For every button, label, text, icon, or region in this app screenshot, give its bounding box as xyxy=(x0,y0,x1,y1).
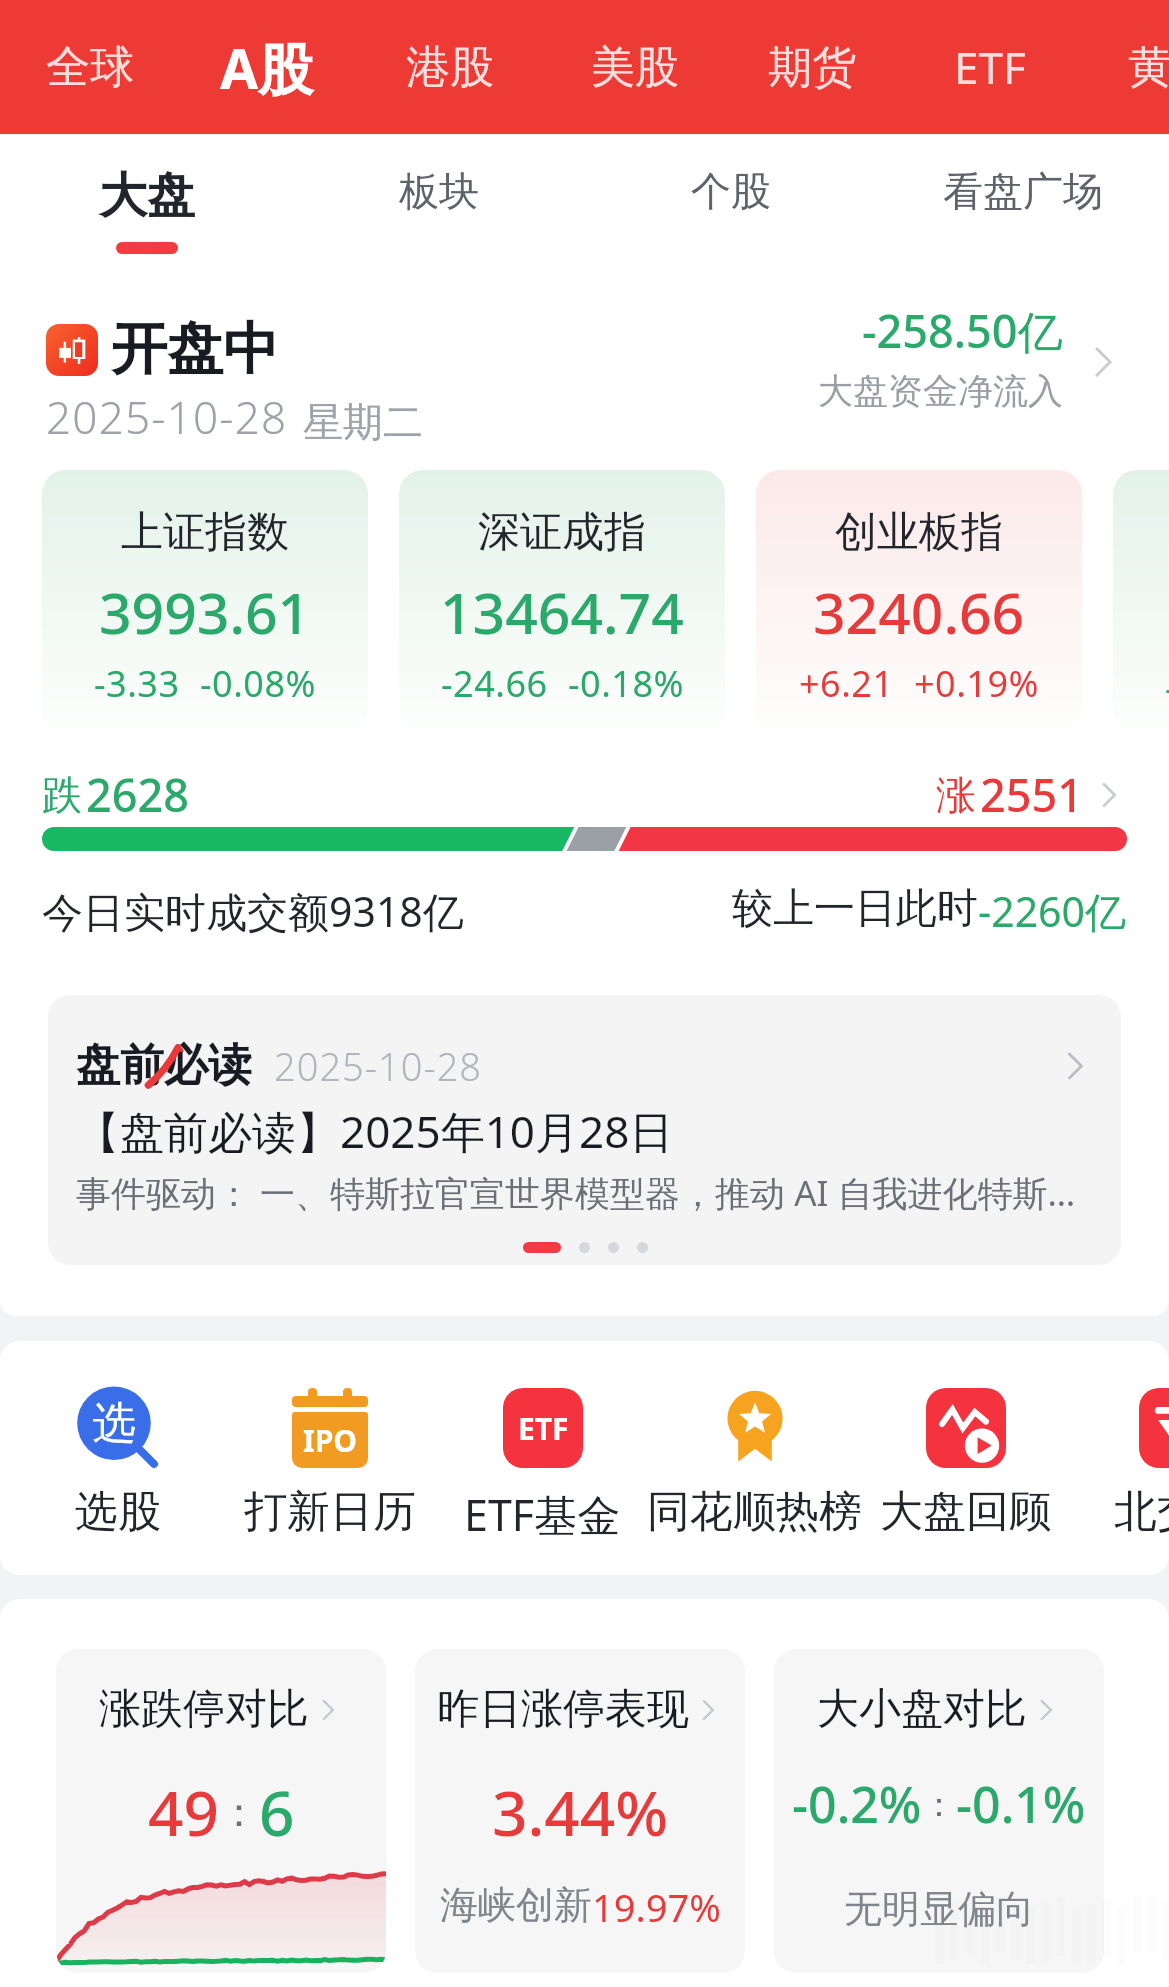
staticText: 看盘广场 xyxy=(943,166,1103,216)
staticText: ： xyxy=(219,1787,259,1837)
staticText: 板块 xyxy=(399,166,479,216)
staticText: -0.2% xyxy=(792,1770,922,1838)
staticText: 星期二 xyxy=(303,397,423,447)
button[interactable]: 美股 xyxy=(577,0,693,134)
staticText: ： xyxy=(922,1783,956,1826)
button[interactable]: 盘前必读 xyxy=(48,995,1121,1265)
button[interactable]: 全球 xyxy=(32,0,148,134)
staticText: 无明显偏向 xyxy=(844,1885,1034,1933)
staticText: 涨跌停对比 xyxy=(99,1683,309,1736)
staticText: 打新日历 xyxy=(244,1485,416,1539)
button[interactable]: 大盘 xyxy=(0,134,293,258)
button[interactable]: 深证成指 xyxy=(399,470,725,734)
staticText: -3.33 xyxy=(94,659,180,708)
staticText: 北交所 xyxy=(1114,1485,1169,1539)
other: 查看资金流向 xyxy=(1081,340,1125,384)
staticText: 上证指数 xyxy=(121,506,289,559)
staticText: A股 xyxy=(220,30,314,105)
staticText: 跌 xyxy=(42,770,82,820)
staticText: -0.1% xyxy=(956,1770,1086,1838)
staticText: -24.66 xyxy=(441,659,548,708)
button[interactable]: 涨跌停对比 xyxy=(56,1649,386,1973)
button[interactable]: 黄 xyxy=(1092,0,1169,134)
button[interactable]: 开盘中 xyxy=(0,258,1169,470)
staticText: 【盘前必读】2025年10月28日 xyxy=(76,1101,674,1161)
staticText: 19.97% xyxy=(592,1881,721,1933)
staticText: -2260亿 xyxy=(978,883,1127,939)
button[interactable]: A股 xyxy=(209,0,325,134)
staticText: 期货 xyxy=(768,40,856,95)
staticText: ETF xyxy=(954,37,1026,97)
button[interactable]: 港股 xyxy=(392,0,508,134)
staticText: IPO xyxy=(303,1420,358,1461)
button[interactable]: 北交所 xyxy=(1072,1341,1169,1575)
staticText: -258.50亿 xyxy=(862,300,1063,361)
button[interactable]: ETF xyxy=(932,0,1048,134)
staticText: 选股 xyxy=(75,1485,161,1539)
staticText: 全球 xyxy=(46,40,134,95)
button[interactable]: 跌 xyxy=(42,764,1127,825)
staticText: 同花顺热榜 xyxy=(647,1485,862,1539)
staticText: 大盘 xyxy=(99,166,195,226)
staticText: 今日实时成交额9318亿 xyxy=(42,883,464,939)
button[interactable]: 昨日涨停表现 xyxy=(415,1649,745,1973)
staticText: ETF xyxy=(518,1408,569,1449)
staticText: 13464.74 xyxy=(440,573,684,651)
staticText: 大小盘对比 xyxy=(817,1683,1027,1736)
button[interactable]: IPO xyxy=(224,1341,436,1575)
staticText: 黄 xyxy=(1128,40,1169,95)
staticText: 大盘资金净流入 xyxy=(818,369,1063,413)
staticText: 港股 xyxy=(406,40,494,95)
staticText: 美股 xyxy=(591,40,679,95)
staticText: 事件驱动： 一、特斯拉官宣世界模型器，推动 AI 自我进化特斯… xyxy=(76,1169,1076,1217)
button[interactable]: 大盘回顾 xyxy=(860,1341,1072,1575)
staticText: 2628 xyxy=(86,764,189,825)
staticText: -0.08% xyxy=(200,659,316,708)
button[interactable]: 同花顺热榜 xyxy=(648,1341,860,1575)
button[interactable]: 看盘广场 xyxy=(877,134,1169,258)
staticText: 深证成指 xyxy=(478,506,646,559)
staticText: 大盘回顾 xyxy=(880,1485,1052,1539)
staticText: 选 xyxy=(92,1396,136,1451)
staticText: 涨 xyxy=(936,770,976,820)
staticText: 2025-10-28 xyxy=(274,1040,483,1092)
staticText: 开盘中 xyxy=(111,314,279,385)
staticText: +0.19% xyxy=(914,659,1039,708)
button[interactable]: 上证指数 xyxy=(42,470,368,734)
staticText: 6 xyxy=(259,1770,295,1854)
staticText: -3.12 xyxy=(1165,663,1169,712)
button[interactable]: 大小盘对比 xyxy=(774,1649,1104,1973)
button[interactable]: 期货 xyxy=(754,0,870,134)
staticText: 个股 xyxy=(691,166,771,216)
button[interactable]: ETF xyxy=(436,1341,648,1575)
staticText: 海峡创新 xyxy=(440,1881,592,1929)
staticText: 3.44% xyxy=(492,1770,669,1854)
button[interactable]: 北证50 xyxy=(1113,470,1169,734)
staticText: 盘前必读 xyxy=(76,1038,252,1093)
button[interactable]: 选 xyxy=(12,1341,224,1575)
staticText: +6.21 xyxy=(799,659,894,708)
staticText: 3993.61 xyxy=(99,573,311,651)
button[interactable]: 板块 xyxy=(293,134,585,258)
staticText: 2025-10-28 xyxy=(46,387,288,447)
button[interactable]: 个股 xyxy=(585,134,877,258)
staticText: 昨日涨停表现 xyxy=(437,1683,689,1736)
staticText: 创业板指 xyxy=(835,506,1003,559)
staticText: 49 xyxy=(148,1770,219,1854)
staticText: 2551 xyxy=(980,764,1083,825)
staticText: ETF基金 xyxy=(464,1485,621,1544)
staticText: 3240.66 xyxy=(813,573,1025,651)
button[interactable]: 创业板指 xyxy=(756,470,1082,734)
staticText: -0.18% xyxy=(568,659,684,708)
staticText: 较上一日此时 xyxy=(732,883,978,935)
